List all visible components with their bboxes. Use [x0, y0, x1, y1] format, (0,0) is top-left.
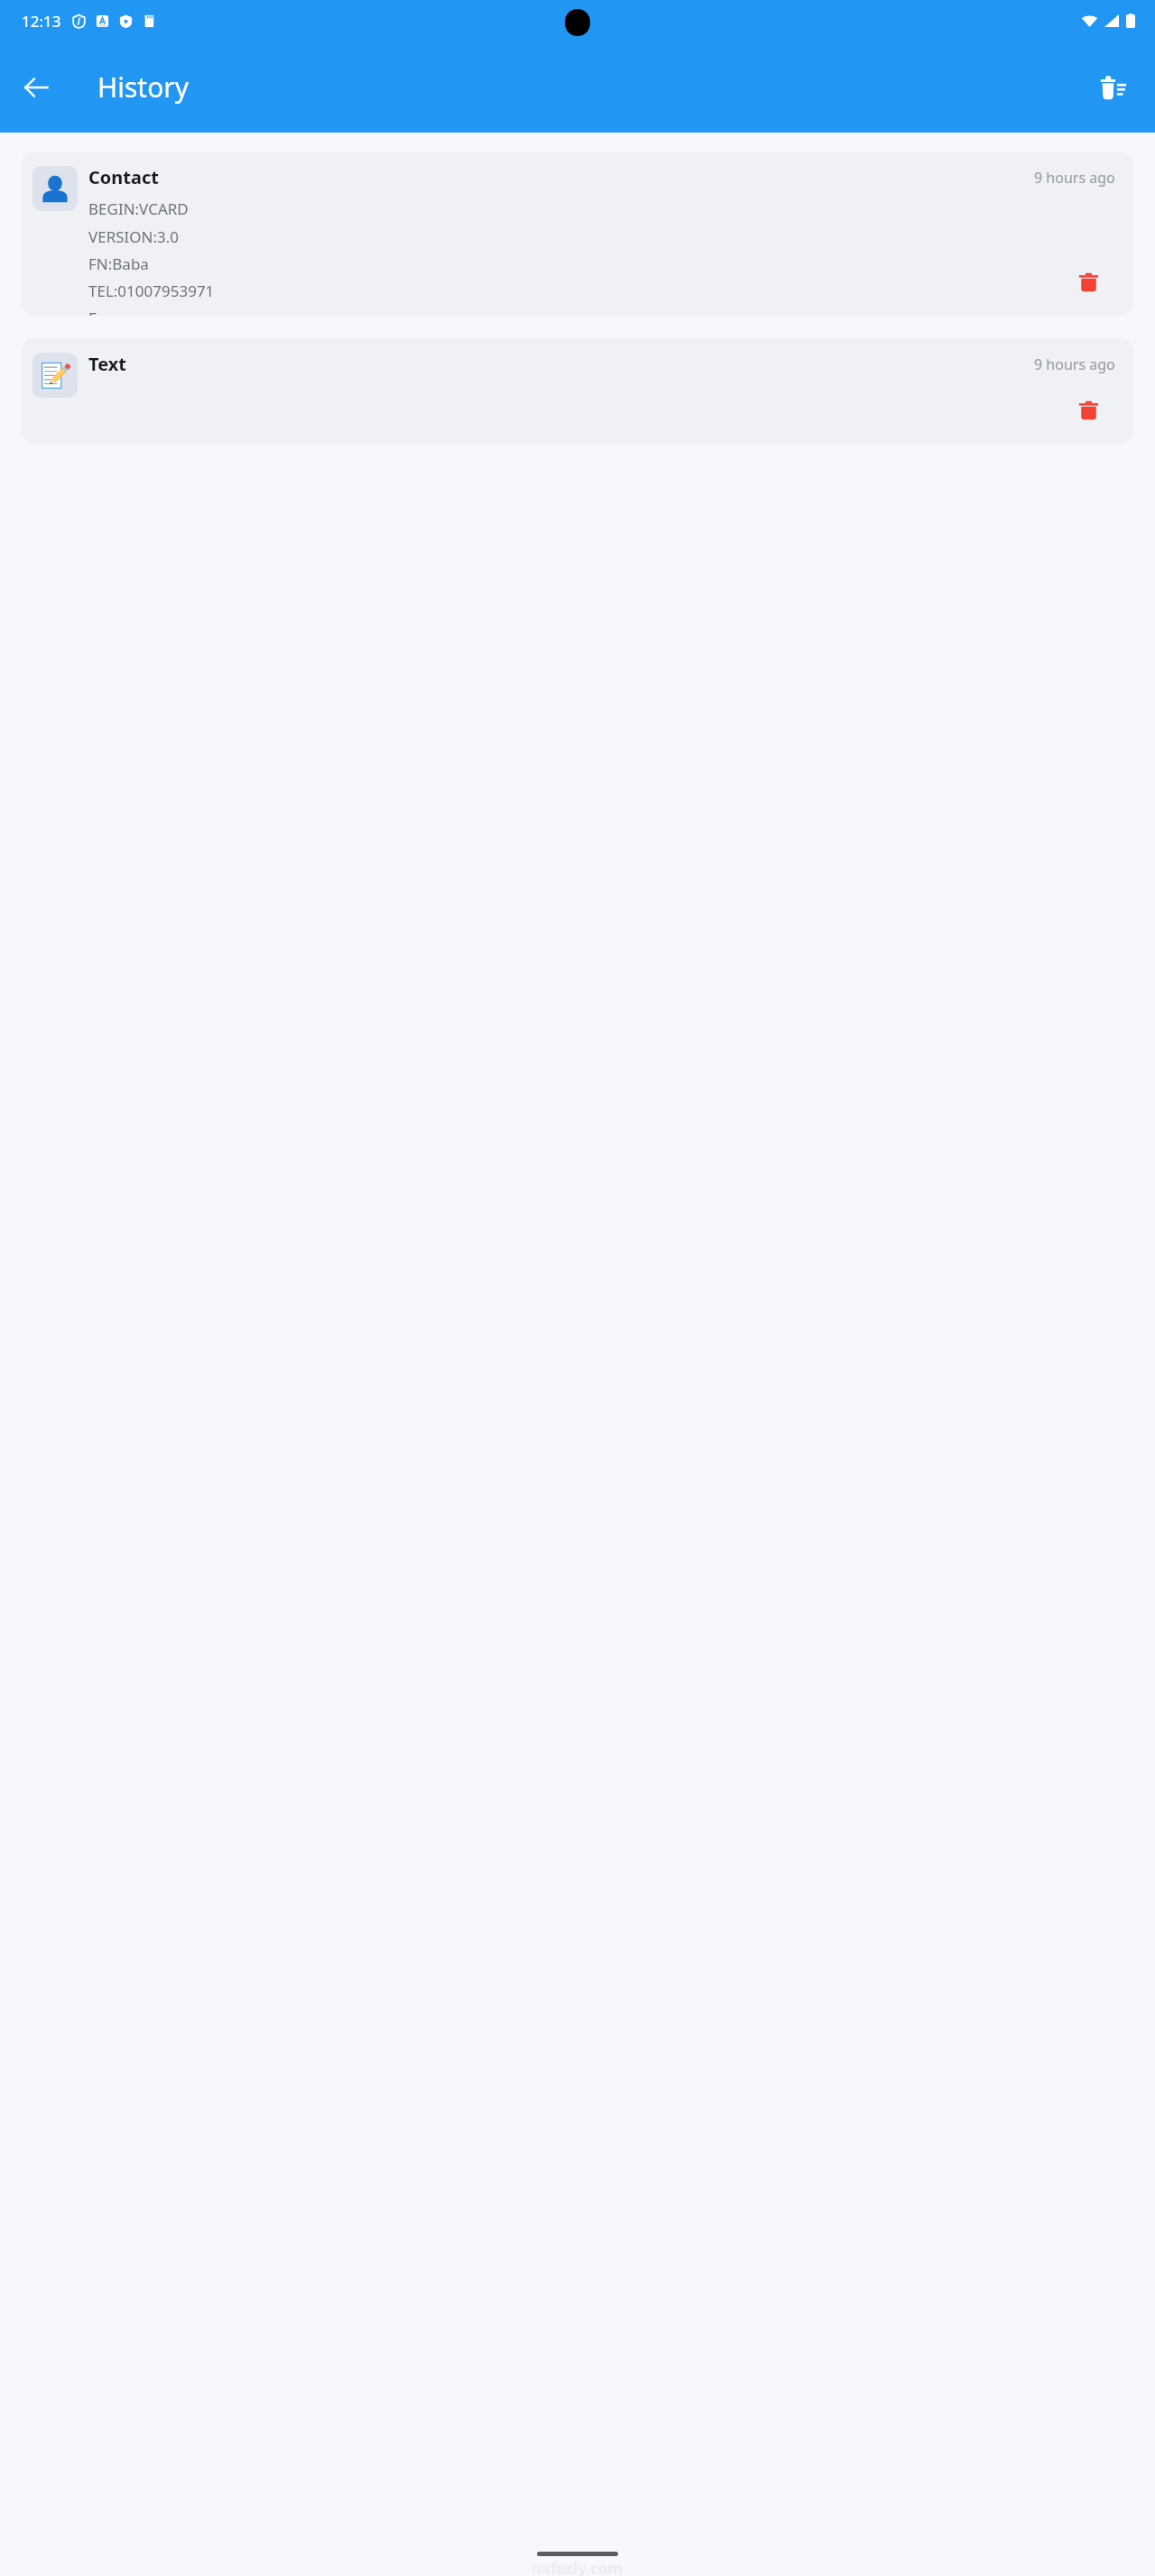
button[interactable]: Text	[22, 338, 1133, 444]
staticText: Contact	[88, 165, 159, 189]
staticText: 9 hours ago	[1034, 168, 1115, 188]
button[interactable]: Delete	[1070, 391, 1106, 428]
button[interactable]: Delete all history	[1085, 59, 1142, 116]
staticText: Text	[88, 352, 126, 376]
staticText: nafezly.com	[531, 2558, 624, 2576]
button[interactable]: Back	[7, 59, 65, 116]
button[interactable]: Delete	[1070, 263, 1106, 299]
staticText: 9 hours ago	[1034, 354, 1115, 374]
button[interactable]: Contact	[22, 152, 1133, 316]
staticText: 12:13	[22, 11, 61, 32]
staticText: BEGIN:VCARD VERSION:3.0 FN:Baba TEL:0100…	[88, 198, 215, 316]
staticText: History	[97, 69, 189, 106]
